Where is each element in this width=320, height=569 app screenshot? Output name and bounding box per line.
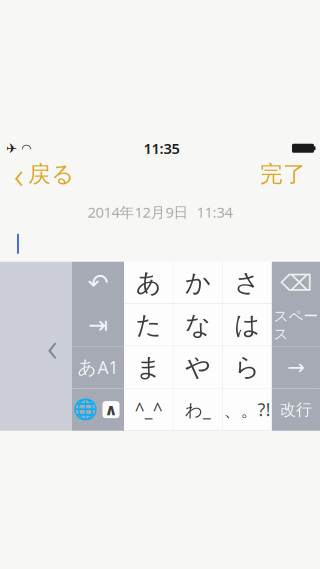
button[interactable]: Next field xyxy=(72,304,124,346)
button[interactable]: は xyxy=(223,304,272,346)
button[interactable]: わ_ xyxy=(173,388,223,431)
staticText: わ_ xyxy=(185,398,211,421)
staticText: ◠ xyxy=(21,141,31,155)
staticText: ま xyxy=(136,352,162,383)
staticText: 完了 xyxy=(260,160,306,188)
button[interactable]: や xyxy=(173,346,223,388)
staticText: 11:35 xyxy=(143,138,179,158)
staticText: 改行 xyxy=(280,400,312,419)
staticText: ‹ xyxy=(47,320,58,373)
button[interactable]: ま xyxy=(124,346,173,388)
staticText: ⇥ xyxy=(88,311,108,339)
staticText: ‹ xyxy=(14,149,24,199)
staticText: 戻る xyxy=(28,160,74,188)
button[interactable]: ^_^ xyxy=(124,388,173,431)
staticText: さ xyxy=(234,267,260,298)
staticText: た xyxy=(136,310,162,341)
button[interactable]: 改行 xyxy=(272,388,320,431)
staticText: や xyxy=(185,352,211,383)
staticText: は xyxy=(234,310,260,341)
staticText: 2014年12月9日 11:34 xyxy=(87,202,232,222)
button[interactable]: ‹ xyxy=(4,159,84,189)
button[interactable]: な xyxy=(173,304,223,346)
button[interactable]: 完了 xyxy=(250,159,316,189)
staticText: 🌐 xyxy=(72,398,97,421)
staticText: A1 xyxy=(97,356,118,379)
staticText: あ xyxy=(77,356,96,379)
staticText: ^_^ xyxy=(135,398,163,421)
button[interactable]: Undo xyxy=(72,262,124,304)
staticText: 、。?! xyxy=(224,398,271,421)
staticText: ↶ xyxy=(87,268,108,297)
button[interactable]: Delete xyxy=(272,262,320,304)
staticText: ✈ xyxy=(6,141,17,156)
staticText: か xyxy=(185,267,211,298)
button[interactable]: た xyxy=(124,304,173,346)
button[interactable]: スペース xyxy=(272,304,320,346)
staticText: ら xyxy=(234,352,260,383)
button[interactable]: 、。?! xyxy=(223,388,272,431)
staticText: → xyxy=(287,355,305,379)
button[interactable]: あ xyxy=(124,262,173,304)
button[interactable]: か xyxy=(173,262,223,304)
button[interactable]: Expand keyboard xyxy=(0,262,72,431)
button[interactable]: Input mode xyxy=(72,346,124,388)
staticText: な xyxy=(185,310,211,341)
button[interactable]: さ xyxy=(223,262,272,304)
staticText: ∧ xyxy=(104,400,117,419)
button[interactable]: Switch keyboard xyxy=(72,388,98,431)
button[interactable]: Hide keyboard xyxy=(98,388,124,431)
button[interactable]: ら xyxy=(223,346,272,388)
staticText: スペース xyxy=(273,307,318,343)
staticText: あ xyxy=(136,267,162,298)
staticText: ⌫ xyxy=(280,270,312,296)
button[interactable]: Next candidate xyxy=(272,346,320,388)
